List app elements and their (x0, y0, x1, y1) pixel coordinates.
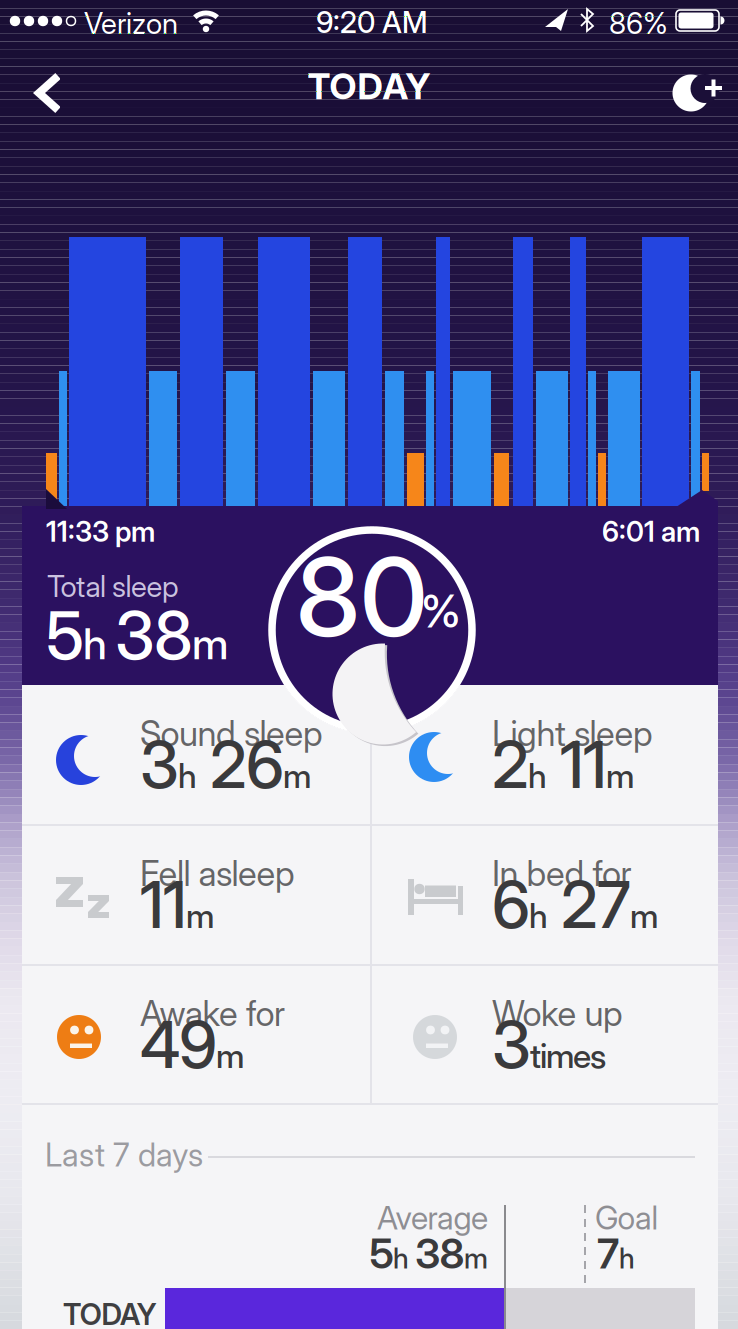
button[interactable]: Back (0, 0, 60, 120)
staticText: 5h 38m (369, 1229, 488, 1278)
staticText: Awake for (140, 993, 285, 1034)
staticText: Woke up (492, 993, 623, 1034)
staticText: Total sleep (47, 569, 179, 604)
staticText: TODAY (63, 1297, 157, 1329)
staticText: 3times (492, 1007, 606, 1082)
button[interactable]: Add sleep (0, 0, 738, 130)
staticText: Verizon (84, 6, 178, 41)
staticText: 11m (140, 867, 214, 942)
staticText: TODAY (307, 65, 430, 107)
staticText: 9:20 AM (316, 5, 428, 40)
staticText: 86% (609, 6, 668, 41)
staticText: Average (377, 1199, 488, 1237)
staticText: 11:33 pm (46, 515, 155, 548)
staticText: 49m (140, 1007, 244, 1082)
staticText: 6:01 am (602, 515, 700, 548)
staticText: Fell asleep (140, 853, 295, 894)
staticText: Light sleep (492, 713, 653, 754)
staticText: Goal (595, 1199, 658, 1237)
staticText: 5h 38m (46, 597, 228, 674)
staticText: Last 7 days (45, 1136, 203, 1174)
staticText: 80 (296, 533, 428, 661)
staticText: 6h 27m (492, 867, 658, 942)
staticText: Sound sleep (140, 713, 323, 754)
staticText: 7h (597, 1229, 635, 1278)
staticText: 2h 11m (492, 727, 634, 802)
staticText: 3h 26m (140, 727, 311, 802)
staticText: In bed for (492, 853, 631, 894)
staticText: % (421, 584, 461, 638)
